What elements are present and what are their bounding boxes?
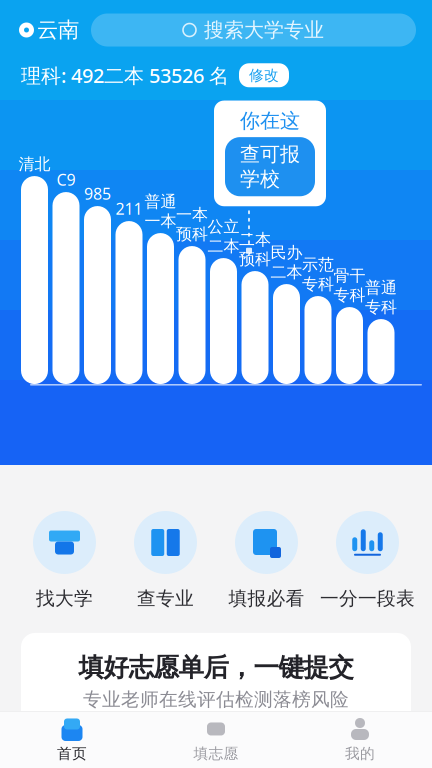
staticText: 普通 bbox=[365, 278, 397, 297]
staticText: 找大学 bbox=[36, 587, 93, 610]
staticText: 云南 bbox=[37, 17, 79, 43]
button[interactable]: 填报必看 bbox=[216, 511, 317, 610]
staticText: 专科 bbox=[333, 285, 365, 305]
staticText: 985 bbox=[84, 183, 111, 204]
staticText: 211 bbox=[115, 198, 142, 219]
staticText: 填志愿 bbox=[193, 744, 238, 762]
staticText: 查可报学校 bbox=[240, 142, 300, 191]
staticText: 二本 bbox=[270, 262, 302, 282]
staticText: 一分一段表 bbox=[320, 587, 415, 610]
staticText: 你在这 bbox=[240, 109, 300, 133]
staticText: 首页 bbox=[57, 744, 87, 762]
staticText: 理科: 492二本 53526 名 bbox=[21, 62, 229, 89]
staticText: 示范 bbox=[302, 255, 334, 274]
staticText: 查专业 bbox=[137, 587, 194, 610]
button[interactable]: 首页 bbox=[0, 711, 144, 767]
staticText: 填报必看 bbox=[228, 587, 304, 610]
staticText: 修改 bbox=[249, 66, 279, 84]
button[interactable]: 云南 bbox=[0, 12, 87, 48]
staticText: 专科 bbox=[302, 274, 334, 294]
staticText: 专科 bbox=[365, 297, 397, 317]
button[interactable]: 填好志愿单后，一键提交 bbox=[21, 633, 411, 735]
staticText: 二本 bbox=[207, 236, 239, 256]
staticText: 填好志愿单后，一键提交 bbox=[78, 652, 353, 683]
button[interactable]: 一分一段表 bbox=[317, 511, 418, 610]
staticText: 预科 bbox=[176, 224, 208, 244]
staticText: 骨干 bbox=[333, 266, 365, 285]
button[interactable]: 查可报学校 bbox=[225, 137, 315, 196]
staticText: 一本 bbox=[176, 205, 208, 224]
staticText: 预科 bbox=[239, 249, 271, 269]
staticText: 清北 bbox=[18, 154, 50, 174]
button[interactable]: 填志愿 bbox=[144, 711, 288, 767]
button[interactable]: 修改 bbox=[239, 63, 289, 87]
button[interactable]: 找大学 bbox=[14, 511, 115, 610]
staticText: 一本 bbox=[144, 211, 176, 231]
staticText: 专业老师在线评估检测落榜风险 bbox=[83, 688, 349, 711]
staticText: 搜索大学专业 bbox=[204, 18, 324, 42]
button[interactable]: 查专业 bbox=[115, 511, 216, 610]
staticText: 公立 bbox=[207, 217, 239, 236]
staticText: 普通 bbox=[144, 192, 176, 211]
staticText: 二本 bbox=[239, 230, 271, 249]
staticText: C9 bbox=[56, 169, 75, 190]
button[interactable]: 搜索大学专业 bbox=[91, 13, 416, 46]
staticText: 民办 bbox=[270, 243, 302, 262]
staticText: 我的 bbox=[345, 744, 375, 762]
button[interactable]: 我的 bbox=[288, 711, 432, 767]
